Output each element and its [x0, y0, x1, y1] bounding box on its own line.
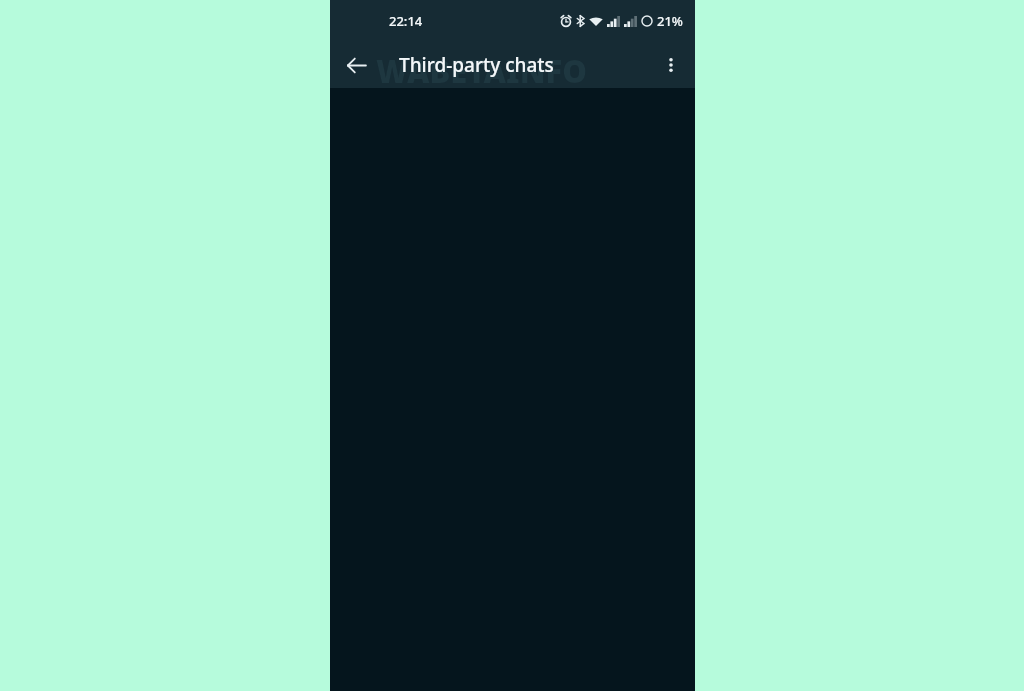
button[interactable]: Back — [336, 45, 376, 85]
staticText: 22:14 — [389, 12, 423, 30]
button[interactable]: More options — [651, 45, 691, 85]
staticText: Third-party chats — [399, 52, 554, 78]
staticText: 21% — [657, 12, 683, 30]
staticText: WABETAINFO — [376, 50, 587, 92]
